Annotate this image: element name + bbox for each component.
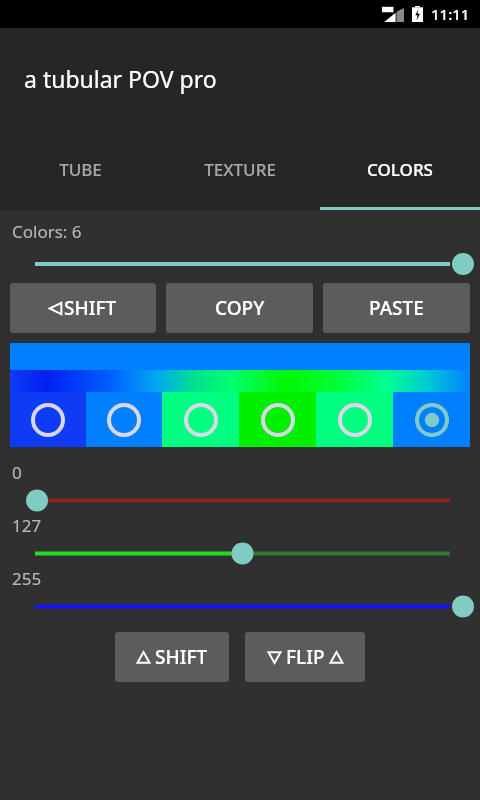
button[interactable]	[0, 537, 480, 567]
staticText: COLORS	[367, 158, 433, 181]
staticText: Colors: 6	[12, 220, 82, 243]
button[interactable]: COPY	[166, 283, 313, 333]
button[interactable]: SHIFT	[10, 283, 156, 333]
staticText: TEXTURE	[204, 158, 276, 181]
staticText: TUBE	[59, 158, 102, 181]
staticText: 255	[12, 567, 42, 590]
button[interactable]	[0, 590, 480, 620]
button[interactable]: Select color	[10, 392, 86, 447]
staticText: 0	[12, 461, 22, 484]
button[interactable]	[0, 251, 480, 277]
button[interactable]: Select color	[393, 392, 470, 447]
button[interactable]: Select color	[316, 392, 393, 447]
button[interactable]: PASTE	[323, 283, 470, 333]
button[interactable]: Select color	[162, 392, 239, 447]
button[interactable]: Select color	[86, 392, 162, 447]
button[interactable]: TEXTURE	[160, 128, 320, 210]
staticText: COPY	[215, 295, 265, 321]
staticText: FLIP	[286, 644, 325, 670]
button[interactable]: Select color	[239, 392, 316, 447]
button[interactable]: SHIFT	[115, 632, 229, 682]
staticText: SHIFT	[155, 644, 208, 670]
button[interactable]	[0, 484, 480, 514]
staticText: PASTE	[369, 295, 424, 321]
button[interactable]: FLIP	[245, 632, 365, 682]
staticText: 127	[12, 514, 42, 537]
staticText: a tubular POV pro	[24, 63, 217, 94]
staticText: 11:11	[431, 4, 470, 24]
button[interactable]: COLORS	[320, 128, 480, 210]
staticText: SHIFT	[64, 295, 117, 321]
button[interactable]: TUBE	[0, 128, 160, 210]
